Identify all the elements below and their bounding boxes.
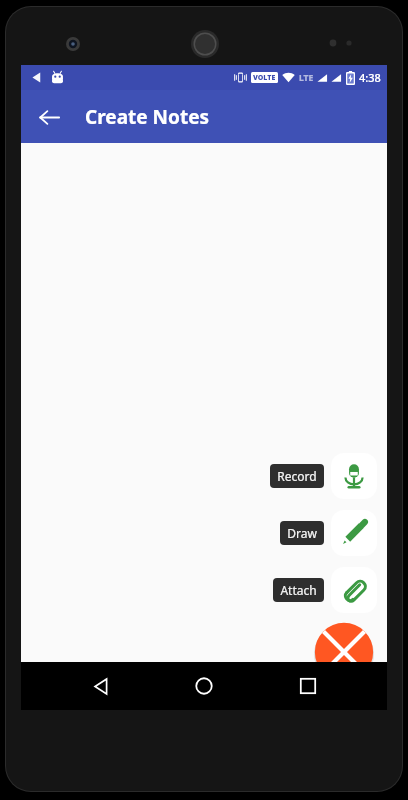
button[interactable]: Attach (273, 567, 377, 613)
staticText: Draw (287, 525, 317, 541)
button[interactable]: Back (29, 97, 69, 137)
button[interactable]: Record (270, 453, 377, 499)
staticText: VOLTE (253, 73, 276, 83)
staticText: Attach (280, 582, 317, 598)
button[interactable]: Back (77, 662, 125, 710)
staticText: Record (277, 468, 317, 484)
staticText: Create Notes (85, 104, 210, 130)
staticText: 4:38 (359, 70, 381, 85)
button[interactable]: Home (180, 662, 228, 710)
staticText: LTE (299, 72, 314, 84)
button[interactable]: Close menu (313, 621, 375, 683)
button[interactable]: Recent apps (284, 662, 332, 710)
button[interactable]: Draw (280, 510, 377, 556)
